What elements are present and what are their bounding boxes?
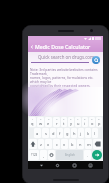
staticText: s (45, 131, 47, 136)
button[interactable]: English (56, 150, 83, 160)
staticText: Medic Dose Calculator (35, 43, 91, 50)
button[interactable]: d (50, 128, 56, 138)
staticText: c (56, 142, 58, 147)
staticText: g (66, 131, 69, 136)
staticText: 3 (48, 117, 50, 120)
button[interactable]: Shift (29, 139, 37, 149)
staticText: j (80, 131, 82, 136)
staticText: 5 (63, 117, 65, 120)
staticText: p (98, 121, 101, 126)
staticText: English (65, 153, 75, 157)
button[interactable]: 1 (29, 117, 36, 127)
button[interactable]: 5 (61, 117, 67, 127)
button[interactable]: Backspace (93, 139, 102, 149)
button[interactable]: s (42, 128, 49, 138)
button[interactable]: , (40, 150, 47, 160)
button[interactable]: Emoji (48, 150, 55, 160)
staticText: f (59, 131, 61, 136)
button[interactable]: Switch keyboard (87, 162, 93, 168)
button[interactable]: 4 (53, 117, 60, 127)
button[interactable]: ?123 (29, 150, 39, 160)
button[interactable]: k (85, 128, 91, 138)
button[interactable]: g (64, 128, 70, 138)
staticText: x (47, 142, 50, 147)
staticText: z (40, 142, 42, 147)
staticText: v (63, 142, 66, 147)
staticText: k (87, 131, 90, 136)
staticText: o (91, 121, 94, 126)
staticText: r (56, 121, 58, 126)
staticText: 9 (91, 117, 93, 120)
button[interactable]: Search (92, 56, 100, 64)
button[interactable]: v (61, 139, 68, 149)
button[interactable]: m (85, 139, 92, 149)
button[interactable]: a (34, 128, 41, 138)
staticText: ?123 (31, 153, 38, 157)
staticText: , (43, 153, 45, 158)
staticText: Note: 3rd parties website/websites conta… (30, 67, 101, 75)
staticText: t (63, 121, 65, 126)
button[interactable]: Recents (71, 162, 77, 168)
staticText: a (36, 131, 39, 136)
button[interactable]: 9 (89, 117, 95, 127)
staticText: n (79, 142, 82, 147)
button[interactable]: Quick search on drugs.com (37, 54, 95, 60)
staticText: u (77, 121, 80, 126)
staticText: 0 (98, 117, 100, 120)
button[interactable]: 7 (75, 117, 81, 127)
staticText: 6 (70, 117, 72, 120)
staticText: 2 (40, 117, 42, 120)
button[interactable]: Back (30, 45, 34, 49)
button[interactable]: j (78, 128, 84, 138)
button[interactable]: x (45, 139, 52, 149)
staticText: e (47, 121, 50, 126)
button[interactable]: n (77, 139, 84, 149)
staticText: copyrighted by their respected owners. (30, 83, 91, 87)
button[interactable]: 8 (82, 117, 88, 127)
button[interactable]: l (92, 128, 98, 138)
button[interactable]: 6 (68, 117, 74, 127)
button[interactable]: 2 (37, 117, 44, 127)
button[interactable]: b (69, 139, 76, 149)
button[interactable]: h (71, 128, 77, 138)
staticText: 7 (77, 117, 79, 120)
button[interactable]: . (84, 150, 91, 160)
button[interactable]: Back (28, 41, 103, 52)
staticText: 8 (84, 117, 86, 120)
staticText: 4 (56, 117, 58, 120)
button[interactable]: Back (38, 162, 44, 168)
button[interactable]: 3 (45, 117, 52, 127)
staticText: d (52, 131, 55, 136)
staticText: names, logos, patterns, formulations etc… (30, 75, 101, 83)
staticText: y (70, 121, 73, 126)
staticText: . (87, 153, 89, 158)
staticText: i (84, 121, 86, 126)
staticText: l (94, 131, 96, 136)
button[interactable]: Home (54, 162, 60, 168)
staticText: b (71, 142, 74, 147)
staticText: q (31, 121, 34, 126)
staticText: w (39, 121, 43, 126)
staticText: m (87, 142, 91, 147)
button[interactable]: Enter (92, 150, 102, 160)
button[interactable]: c (53, 139, 60, 149)
staticText: h (73, 131, 76, 136)
staticText: 1 (32, 117, 34, 120)
button[interactable]: z (38, 139, 44, 149)
button[interactable]: f (57, 128, 63, 138)
button[interactable]: 0 (96, 117, 102, 127)
